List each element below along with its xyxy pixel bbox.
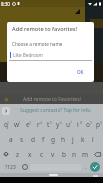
staticText: 8 <box>80 120 83 125</box>
button[interactable]: h <box>58 132 68 147</box>
staticText: b <box>62 150 66 159</box>
button[interactable]: Suggest contacts? Tap for info. <box>20 107 92 114</box>
staticText: 0 <box>100 120 103 125</box>
staticText: a <box>9 135 13 144</box>
button[interactable]: Hide keyboard <box>93 175 98 178</box>
button[interactable]: u <box>63 117 73 132</box>
button[interactable]: ?123 <box>0 161 20 173</box>
staticText: d <box>31 135 35 144</box>
button[interactable]: v <box>47 147 58 161</box>
staticText: s <box>20 135 24 144</box>
button[interactable]: Backspace <box>91 147 103 161</box>
staticText: e <box>26 120 30 129</box>
staticText: 1 <box>7 120 10 125</box>
button[interactable]: Add remote to Favorites! <box>0 94 103 104</box>
staticText: 7 <box>70 120 73 125</box>
button[interactable]: i <box>73 117 83 132</box>
staticText: w <box>14 120 20 129</box>
button[interactable]: y <box>53 117 63 132</box>
button[interactable]: Emoji <box>20 161 29 173</box>
staticText: p <box>96 120 100 129</box>
button[interactable]: s <box>16 132 27 147</box>
staticText: Like Bedroom <box>13 52 43 58</box>
button[interactable]: Shift <box>0 147 12 161</box>
staticText: Choose a remote name <box>12 41 63 47</box>
button[interactable]: a <box>5 132 16 147</box>
staticText: 5 <box>50 120 53 125</box>
button[interactable]: f <box>38 132 48 147</box>
staticText: Add remote to favorites! <box>12 25 78 33</box>
button[interactable]: Enter <box>90 162 100 172</box>
staticText: j <box>72 135 74 144</box>
staticText: u <box>66 120 71 129</box>
button[interactable]: e <box>22 117 33 132</box>
staticText: Add remote to Favorites! <box>23 96 81 103</box>
staticText: 9 <box>90 120 93 125</box>
staticText: l <box>92 135 94 144</box>
button[interactable]: w <box>11 117 22 132</box>
button[interactable]: Expand suggestions <box>2 107 10 115</box>
staticText: f <box>42 135 45 144</box>
button[interactable]: OK <box>67 66 94 78</box>
button[interactable]: t <box>43 117 53 132</box>
button[interactable]: b <box>58 147 69 161</box>
button[interactable]: m <box>80 147 91 161</box>
staticText: OK <box>77 69 84 75</box>
staticText: y <box>56 120 60 129</box>
staticText: k <box>81 135 85 144</box>
button[interactable]: d <box>27 132 38 147</box>
button[interactable]: r <box>33 117 43 132</box>
staticText: g <box>51 135 55 144</box>
button[interactable]: . <box>82 161 89 173</box>
staticText: 4 <box>40 120 43 125</box>
staticText: 2 <box>18 120 21 125</box>
button[interactable]: c <box>36 147 47 161</box>
staticText: v <box>51 150 55 159</box>
staticText: x <box>28 150 32 159</box>
staticText: 3 <box>29 120 32 125</box>
staticText: r <box>37 120 40 129</box>
staticText: h <box>61 135 66 144</box>
button[interactable]: x <box>24 147 36 161</box>
staticText: 8:30 <box>1 1 10 7</box>
staticText: z <box>16 150 20 159</box>
staticText: q <box>4 120 8 129</box>
staticText: n <box>72 150 77 159</box>
staticText: . <box>85 163 87 171</box>
button[interactable]: j <box>68 132 78 147</box>
button[interactable]: k <box>78 132 88 147</box>
button[interactable]: l <box>88 132 98 147</box>
button[interactable]: n <box>69 147 80 161</box>
staticText: i <box>77 120 79 129</box>
button[interactable]: q <box>0 117 11 132</box>
button[interactable]: p <box>93 117 103 132</box>
staticText: t <box>47 120 50 129</box>
staticText: ?123 <box>5 164 16 171</box>
staticText: c <box>40 150 44 159</box>
staticText: o <box>86 120 90 129</box>
button[interactable]: o <box>83 117 93 132</box>
button[interactable]: g <box>48 132 58 147</box>
staticText: 6 <box>60 120 63 125</box>
button[interactable]: z <box>12 147 24 161</box>
staticText: m <box>82 150 89 159</box>
